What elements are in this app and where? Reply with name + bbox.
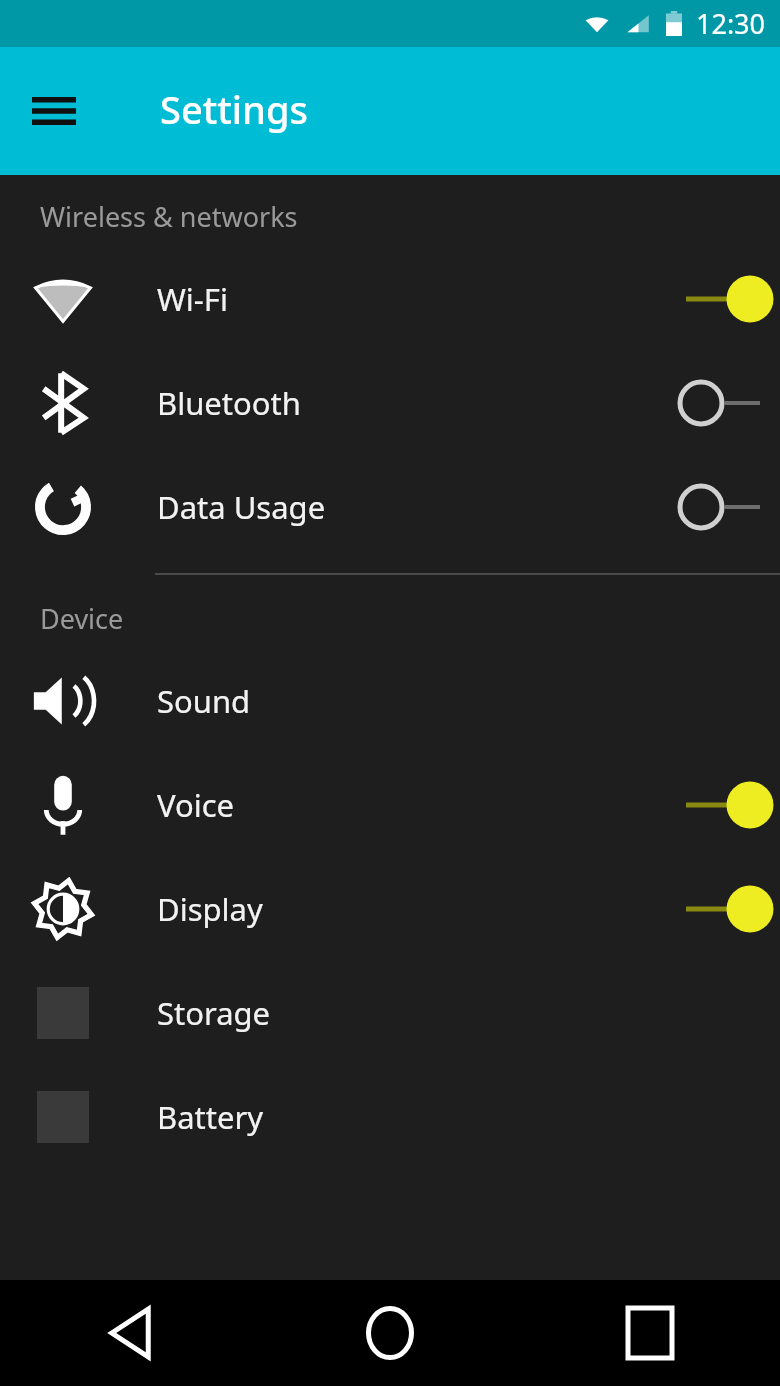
staticText: Display: [157, 888, 263, 930]
staticText: Device: [40, 600, 124, 637]
button[interactable]: Voice: [0, 753, 780, 857]
button[interactable]: Display: [0, 857, 780, 961]
staticText: Wi-Fi: [157, 278, 228, 320]
staticText: Sound: [157, 680, 251, 722]
button[interactable]: Toggle Display: [640, 857, 780, 961]
button[interactable]: Toggle Wi-Fi: [640, 247, 780, 351]
button[interactable]: Toggle Bluetooth: [640, 351, 780, 455]
staticText: Settings: [160, 83, 308, 135]
button[interactable]: Wi-Fi: [0, 247, 780, 351]
staticText: Storage: [157, 992, 271, 1034]
button[interactable]: Toggle Data Usage: [640, 455, 780, 559]
button[interactable]: Recent apps: [520, 1280, 780, 1386]
button[interactable]: Battery: [0, 1065, 780, 1169]
staticText: Battery: [157, 1096, 264, 1138]
button[interactable]: Bluetooth: [0, 351, 780, 455]
button[interactable]: Sound: [0, 649, 780, 753]
button[interactable]: Open navigation drawer: [22, 79, 86, 143]
staticText: Data Usage: [157, 486, 326, 528]
button[interactable]: Toggle Voice: [640, 753, 780, 857]
button[interactable]: Back: [0, 1280, 260, 1386]
button[interactable]: Data Usage: [0, 455, 780, 559]
staticText: 12:30: [696, 5, 766, 42]
staticText: Wireless & networks: [40, 198, 298, 235]
staticText: Voice: [157, 784, 235, 826]
button[interactable]: Home: [260, 1280, 520, 1386]
button[interactable]: Storage: [0, 961, 780, 1065]
staticText: Bluetooth: [157, 382, 301, 424]
